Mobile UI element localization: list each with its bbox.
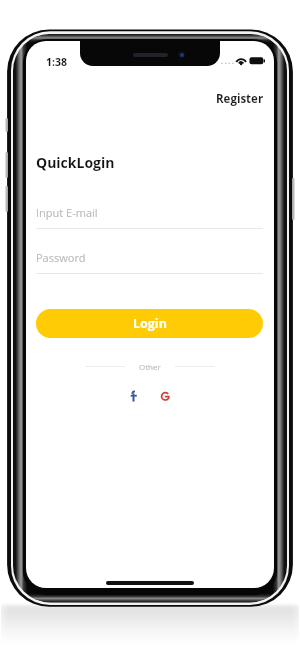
- button[interactable]: Password: [26, 250, 274, 280]
- button[interactable]: Input E-mail: [26, 205, 274, 235]
- button[interactable]: Sign in with Google: [155, 385, 175, 407]
- staticText: Register: [216, 91, 264, 107]
- staticText: Input E-mail: [36, 205, 98, 220]
- staticText: Login: [133, 315, 167, 332]
- staticText: 1:38: [46, 55, 67, 69]
- button[interactable]: Sign in with Facebook: [124, 385, 144, 407]
- staticText: QuickLogin: [36, 153, 115, 172]
- button[interactable]: Register: [216, 91, 264, 107]
- staticText: Password: [36, 250, 86, 265]
- staticText: Other: [139, 361, 161, 372]
- button[interactable]: Login: [36, 309, 263, 338]
